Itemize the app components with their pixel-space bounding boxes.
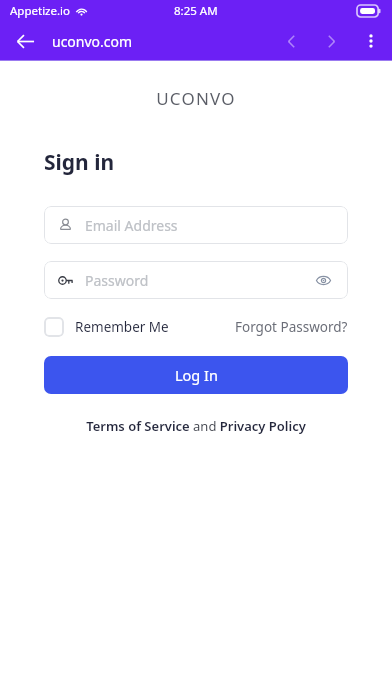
staticText: Terms of Service and Privacy Policy	[86, 417, 306, 435]
staticText: Email Address	[85, 216, 178, 235]
button[interactable]: Forgot Password?	[235, 318, 348, 336]
staticText: 8:25 AM	[174, 3, 218, 19]
button[interactable]: Password	[44, 261, 348, 299]
button[interactable]: Back	[8, 24, 42, 58]
button[interactable]: Email Address	[44, 206, 348, 244]
button[interactable]: More options	[354, 24, 388, 58]
button[interactable]: Terms of Service and Privacy Policy	[44, 417, 348, 435]
staticText: Sign in	[44, 148, 115, 177]
staticText: Remember Me	[75, 318, 169, 336]
staticText: Forgot Password?	[235, 318, 348, 336]
button[interactable]: Remember Me	[44, 317, 173, 337]
staticText: Log In	[175, 365, 218, 385]
staticText: UCONVO	[0, 87, 392, 110]
staticText: uconvo.com	[52, 32, 133, 51]
button[interactable]: Forward	[316, 26, 346, 56]
staticText: Password	[85, 271, 149, 290]
staticText: Appetize.io	[10, 3, 70, 19]
button[interactable]: Log In	[44, 356, 348, 394]
button[interactable]: Show password	[312, 269, 334, 291]
button[interactable]: Back	[276, 26, 306, 56]
